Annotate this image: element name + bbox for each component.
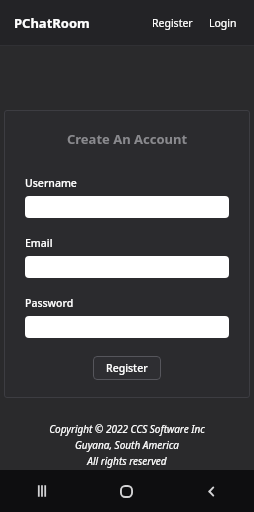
staticText: All rights reserved bbox=[87, 454, 167, 468]
staticText: Copyright © 2022 CCS Software Inc bbox=[49, 422, 205, 436]
staticText: Register bbox=[106, 361, 148, 375]
staticText: Guyana, South America bbox=[75, 438, 179, 452]
staticText: Register bbox=[152, 16, 193, 30]
staticText: Username bbox=[25, 176, 77, 190]
button[interactable]: Register bbox=[93, 356, 161, 380]
button[interactable] bbox=[25, 256, 229, 278]
button[interactable]: Login bbox=[206, 12, 240, 34]
button[interactable]: Home bbox=[84, 470, 169, 512]
staticText: Email bbox=[25, 236, 53, 250]
staticText: Create An Account bbox=[25, 130, 229, 148]
button[interactable] bbox=[25, 196, 229, 218]
button[interactable] bbox=[25, 316, 229, 338]
button[interactable]: Back bbox=[169, 470, 254, 512]
button[interactable]: Register bbox=[149, 12, 196, 34]
button[interactable]: PChatRoom bbox=[14, 14, 90, 32]
staticText: Password bbox=[25, 296, 74, 310]
button[interactable]: Recent apps bbox=[0, 470, 84, 512]
staticText: PChatRoom bbox=[14, 14, 90, 32]
staticText: Login bbox=[209, 16, 237, 30]
